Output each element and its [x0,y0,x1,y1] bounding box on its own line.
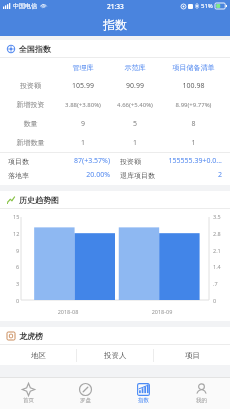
staticText: 中国电信 [13,2,37,10]
staticText: 3.5 [213,213,221,220]
staticText: 地区 [31,351,46,360]
staticText: 1.4 [213,263,221,270]
button[interactable]: 我的 [172,378,230,409]
staticText: 2018-09 [115,308,209,315]
staticText: 落地率 [8,171,29,180]
staticText: 投资额 [4,81,57,90]
staticText: 100.98 [161,81,226,91]
staticText: 15 [13,213,20,220]
staticText: 1 [57,138,109,148]
staticText: 2.8 [213,230,221,237]
staticText: 首页 [23,397,34,404]
staticText: 1 [109,138,161,148]
staticText: 3 [16,280,20,287]
staticText: 2 [158,170,222,180]
staticText: 指数 [103,17,127,32]
staticText: 1 [161,138,226,148]
staticText: 项目 [185,351,200,360]
staticText: 0 [213,297,217,304]
staticText: .7 [213,280,218,287]
staticText: 历史趋势图 [19,195,59,205]
staticText: 管理库 [57,63,109,72]
button[interactable]: 首页 [0,378,57,409]
staticText: 105.99 [57,81,109,91]
staticText: 3.88(+3.80%) [57,101,109,109]
staticText: 项目数 [8,157,29,166]
staticText: 90.99 [109,81,161,91]
staticText: 项目储备清单 [161,63,226,72]
staticText: 4.66(+5.40%) [109,101,161,109]
staticText: 退库项目数 [120,171,155,180]
staticText: 12 [13,230,20,237]
staticText: 8.99(+9.77%) [161,101,226,109]
staticText: 20.00% [29,170,110,180]
staticText: 87(+3.57%) [29,156,110,166]
staticText: 罗盘 [80,397,91,404]
staticText: 指数 [138,397,149,404]
staticText: 投资额 [120,157,141,166]
button[interactable]: 指数 [114,378,172,409]
staticText: 2.1 [213,247,221,254]
staticText: 示范库 [109,63,161,72]
staticText: 全国指数 [19,44,51,54]
staticText: 6 [16,263,20,270]
staticText: 21:33 [107,2,124,11]
staticText: 我的 [196,397,207,404]
staticText: 51% [201,2,213,10]
staticText: 8 [161,119,226,129]
button[interactable]: 项目 [154,345,230,365]
button[interactable]: 罗盘 [57,378,114,409]
staticText: 155555.39+0.0... [144,156,222,166]
staticText: 9 [57,119,109,129]
staticText: 数量 [4,119,57,128]
staticText: 新增投资 [4,100,57,109]
staticText: 投资人 [104,351,127,360]
staticText: 新增数量 [4,138,57,147]
staticText: 2018-08 [21,308,115,315]
button[interactable]: 地区 [0,345,76,365]
staticText: 9 [16,247,20,254]
staticText: 5 [109,119,161,129]
button[interactable]: 投资人 [77,345,153,365]
staticText: 龙虎榜 [19,331,43,341]
staticText: 0 [16,297,20,304]
